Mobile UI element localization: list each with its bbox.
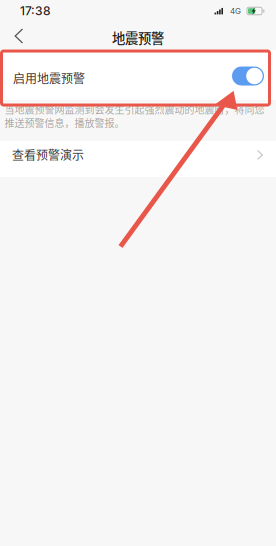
staticText: 当地震预警网监测到会发生引起强烈震动的地震时，将向您 (4, 102, 264, 116)
staticText: 17:38 (20, 4, 51, 18)
staticText: 4G (230, 6, 241, 16)
staticText: 查看预警演示 (12, 146, 84, 163)
button[interactable]: 查看预警演示 (0, 141, 276, 177)
button[interactable]: 启用地震预警 (0, 50, 276, 100)
staticText: 启用地震预警 (13, 69, 85, 87)
button[interactable]: 返回 (0, 22, 38, 50)
staticText: 推送预警信息，播放警报。 (4, 115, 124, 130)
staticText: 地震预警 (112, 28, 164, 47)
